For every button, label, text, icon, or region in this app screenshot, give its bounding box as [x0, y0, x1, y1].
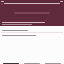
- button[interactable]: Tab 3: [43, 63, 63, 64]
- button[interactable]: [1, 29, 63, 31]
- button[interactable]: Back: [1, 3, 3, 5]
- button[interactable]: Tab 2: [22, 63, 42, 64]
- button[interactable]: [1, 34, 63, 36]
- button[interactable]: Tab 1: [1, 63, 21, 64]
